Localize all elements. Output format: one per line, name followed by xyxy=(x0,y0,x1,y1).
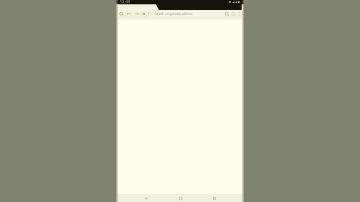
button[interactable]: Home xyxy=(175,194,185,202)
staticText: 12:30 xyxy=(120,0,131,4)
button[interactable]: Recents xyxy=(209,194,219,202)
staticText: Search or type web address xyxy=(155,12,193,16)
button[interactable]: Back xyxy=(141,194,151,202)
button[interactable]: Search or type web address xyxy=(148,11,225,17)
